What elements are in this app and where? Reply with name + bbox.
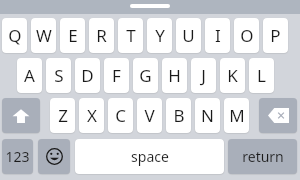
staticText: space [131, 147, 169, 166]
button[interactable]: J [191, 58, 216, 93]
staticText: L [257, 64, 266, 87]
staticText: Y [155, 24, 165, 47]
button[interactable]: 123 [2, 139, 33, 174]
button[interactable]: Emoji [38, 139, 70, 174]
button[interactable]: H [162, 58, 187, 93]
staticText: R [96, 24, 107, 47]
staticText: J [201, 64, 206, 87]
button[interactable]: S [46, 58, 71, 93]
staticText: D [81, 64, 94, 87]
staticText: X [87, 104, 97, 127]
button[interactable]: M [224, 98, 249, 133]
staticText: G [139, 64, 152, 87]
staticText: F [112, 64, 121, 87]
staticText: Z [58, 104, 68, 127]
button[interactable]: I [205, 18, 230, 53]
button[interactable]: space [75, 139, 224, 174]
staticText: M [229, 104, 245, 127]
staticText: 123 [5, 147, 30, 166]
button[interactable]: R [89, 18, 114, 53]
staticText: P [270, 24, 281, 47]
staticText: K [227, 64, 238, 87]
button[interactable]: Backspace [259, 98, 297, 133]
staticText: E [68, 24, 78, 47]
staticText: H [168, 64, 181, 87]
button[interactable]: W [31, 18, 56, 53]
button[interactable]: N [195, 98, 220, 133]
button[interactable]: D [75, 58, 100, 93]
staticText: O [240, 24, 254, 47]
staticText: C [115, 104, 126, 127]
staticText: V [144, 104, 155, 127]
button[interactable]: Q [2, 18, 27, 53]
button[interactable]: Y [147, 18, 172, 53]
button[interactable]: X [79, 98, 104, 133]
staticText: I [215, 24, 221, 47]
staticText: S [54, 64, 64, 87]
button[interactable]: C [108, 98, 133, 133]
staticText: Q [8, 24, 22, 47]
button[interactable]: G [133, 58, 158, 93]
button[interactable]: Z [50, 98, 75, 133]
button[interactable]: T [118, 18, 143, 53]
staticText: A [24, 64, 35, 87]
staticText: T [126, 24, 136, 47]
staticText: N [201, 104, 214, 127]
button[interactable]: K [220, 58, 245, 93]
button[interactable]: F [104, 58, 129, 93]
button[interactable]: A [17, 58, 42, 93]
button[interactable]: O [234, 18, 259, 53]
staticText: W [36, 24, 52, 47]
button[interactable]: L [249, 58, 274, 93]
button[interactable]: P [263, 18, 288, 53]
staticText: B [173, 104, 185, 127]
button[interactable]: return [228, 139, 297, 174]
button[interactable]: Shift [2, 98, 40, 133]
button[interactable]: E [60, 18, 85, 53]
button[interactable]: B [166, 98, 191, 133]
button[interactable]: V [137, 98, 162, 133]
staticText: U [182, 24, 195, 47]
staticText: return [242, 147, 284, 166]
button[interactable]: U [176, 18, 201, 53]
